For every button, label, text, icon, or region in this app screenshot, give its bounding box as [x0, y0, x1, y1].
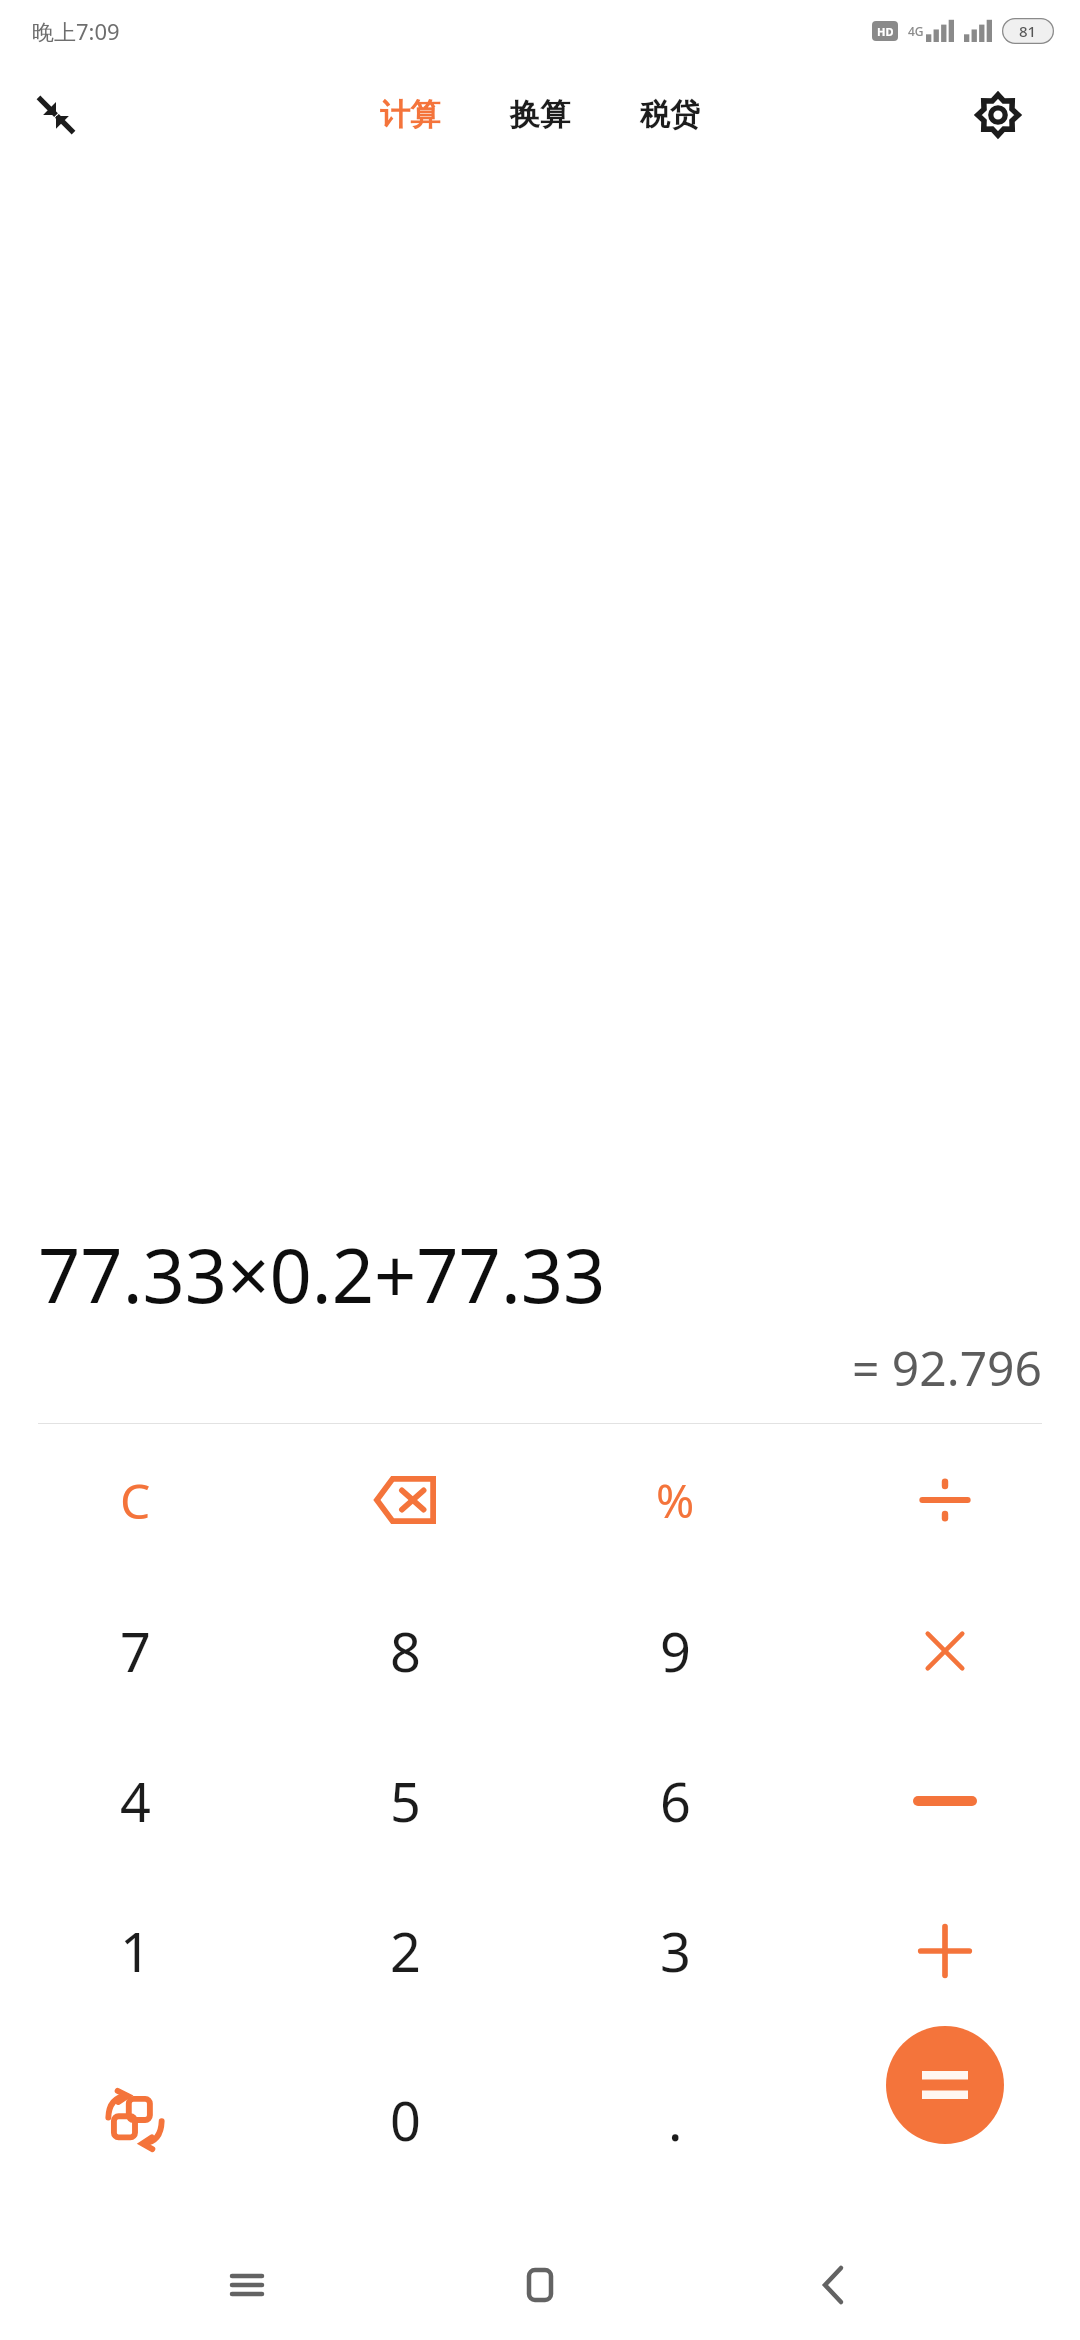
staticText: 3 [660, 1914, 691, 1988]
staticText: 77.33×0.2+77.33 [38, 1224, 1042, 1325]
staticText: 2 [390, 1914, 421, 1988]
button[interactable]: 计算 [374, 88, 446, 142]
staticText: 6 [660, 1764, 691, 1838]
staticText: C [120, 1468, 151, 1533]
button[interactable]: 2 [270, 1876, 540, 2026]
staticText: 税贷 [640, 96, 700, 134]
button[interactable]: 税贷 [634, 88, 706, 142]
staticText: HD [877, 24, 894, 39]
button[interactable]: 0 [270, 2026, 540, 2214]
button[interactable]: Back [787, 2239, 879, 2331]
staticText: 换算 [510, 96, 570, 134]
button[interactable]: Equals [886, 2026, 1004, 2144]
staticText: . [668, 2083, 683, 2157]
button[interactable]: 7 [0, 1576, 270, 1726]
button[interactable]: . [540, 2026, 810, 2214]
staticText: 9 [660, 1614, 691, 1688]
staticText: 晚上7:09 [32, 16, 120, 46]
button[interactable]: 8 [270, 1576, 540, 1726]
button[interactable]: C [0, 1424, 270, 1576]
button[interactable]: Collapse [20, 79, 92, 151]
button[interactable]: 4 [0, 1726, 270, 1876]
staticText: = 92.796 [38, 1335, 1042, 1400]
button[interactable]: 9 [540, 1576, 810, 1726]
button[interactable]: 5 [270, 1726, 540, 1876]
staticText: 8 [390, 1614, 421, 1688]
button[interactable]: 3 [540, 1876, 810, 2026]
button[interactable]: 1 [0, 1876, 270, 2026]
staticText: 5 [390, 1764, 421, 1838]
staticText: 计算 [380, 96, 440, 134]
staticText: 7 [120, 1614, 151, 1688]
button[interactable]: Settings [966, 83, 1030, 147]
button[interactable]: Convert [0, 2026, 270, 2214]
staticText: 81 [1019, 21, 1037, 41]
staticText: % [656, 1469, 695, 1532]
staticText: 1 [120, 1914, 151, 1988]
button[interactable]: Divide [810, 1424, 1080, 1576]
button[interactable]: Minus [810, 1726, 1080, 1876]
staticText: 4 [120, 1764, 151, 1838]
staticText: 4G [908, 23, 924, 39]
button[interactable]: % [540, 1424, 810, 1576]
button[interactable]: Plus [810, 1876, 1080, 2026]
button[interactable]: 换算 [504, 88, 576, 142]
button[interactable]: Multiply [810, 1576, 1080, 1726]
button[interactable]: Home [494, 2239, 586, 2331]
button[interactable]: 6 [540, 1726, 810, 1876]
button[interactable]: Backspace [270, 1424, 540, 1576]
button[interactable]: Recents [201, 2239, 293, 2331]
staticText: 0 [390, 2083, 421, 2157]
